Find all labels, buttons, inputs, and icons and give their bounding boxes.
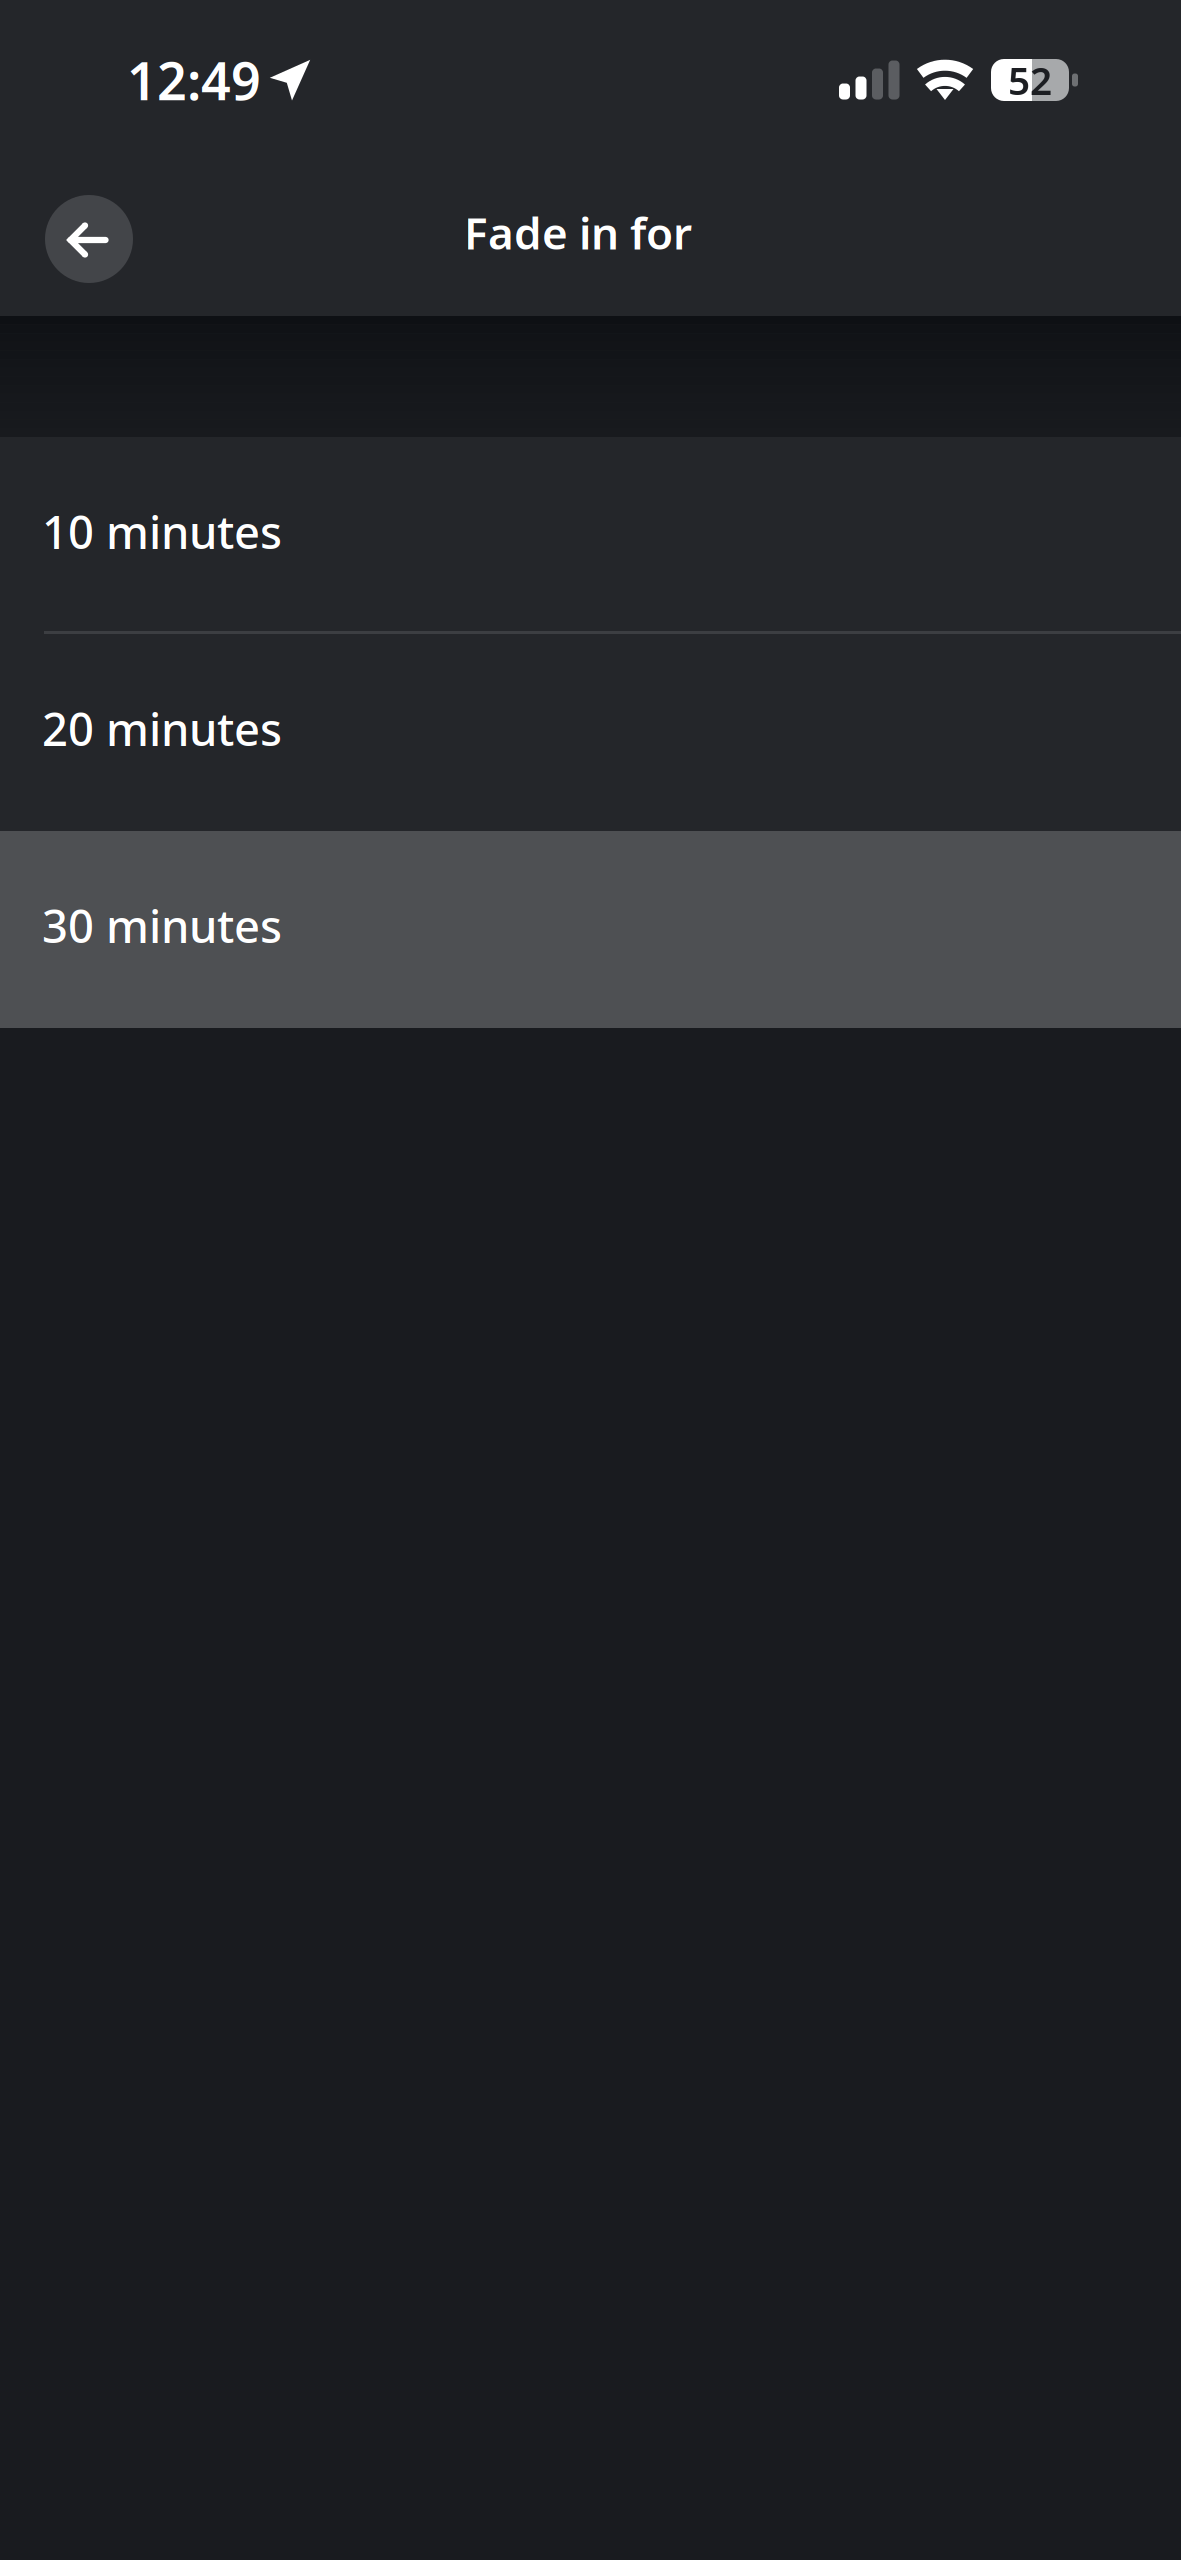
staticText: 30 minutes — [42, 895, 282, 956]
staticText: 52 — [1008, 54, 1052, 106]
button[interactable]: 30 minutes — [0, 831, 1181, 1028]
button[interactable]: Back — [45, 195, 133, 283]
staticText: Fade in for — [464, 203, 692, 262]
button[interactable]: 20 minutes — [0, 634, 1181, 831]
staticText: 10 minutes — [42, 501, 282, 562]
staticText: 12:49 — [127, 45, 261, 115]
button[interactable]: 10 minutes — [0, 437, 1181, 634]
staticText: 20 minutes — [42, 698, 282, 759]
